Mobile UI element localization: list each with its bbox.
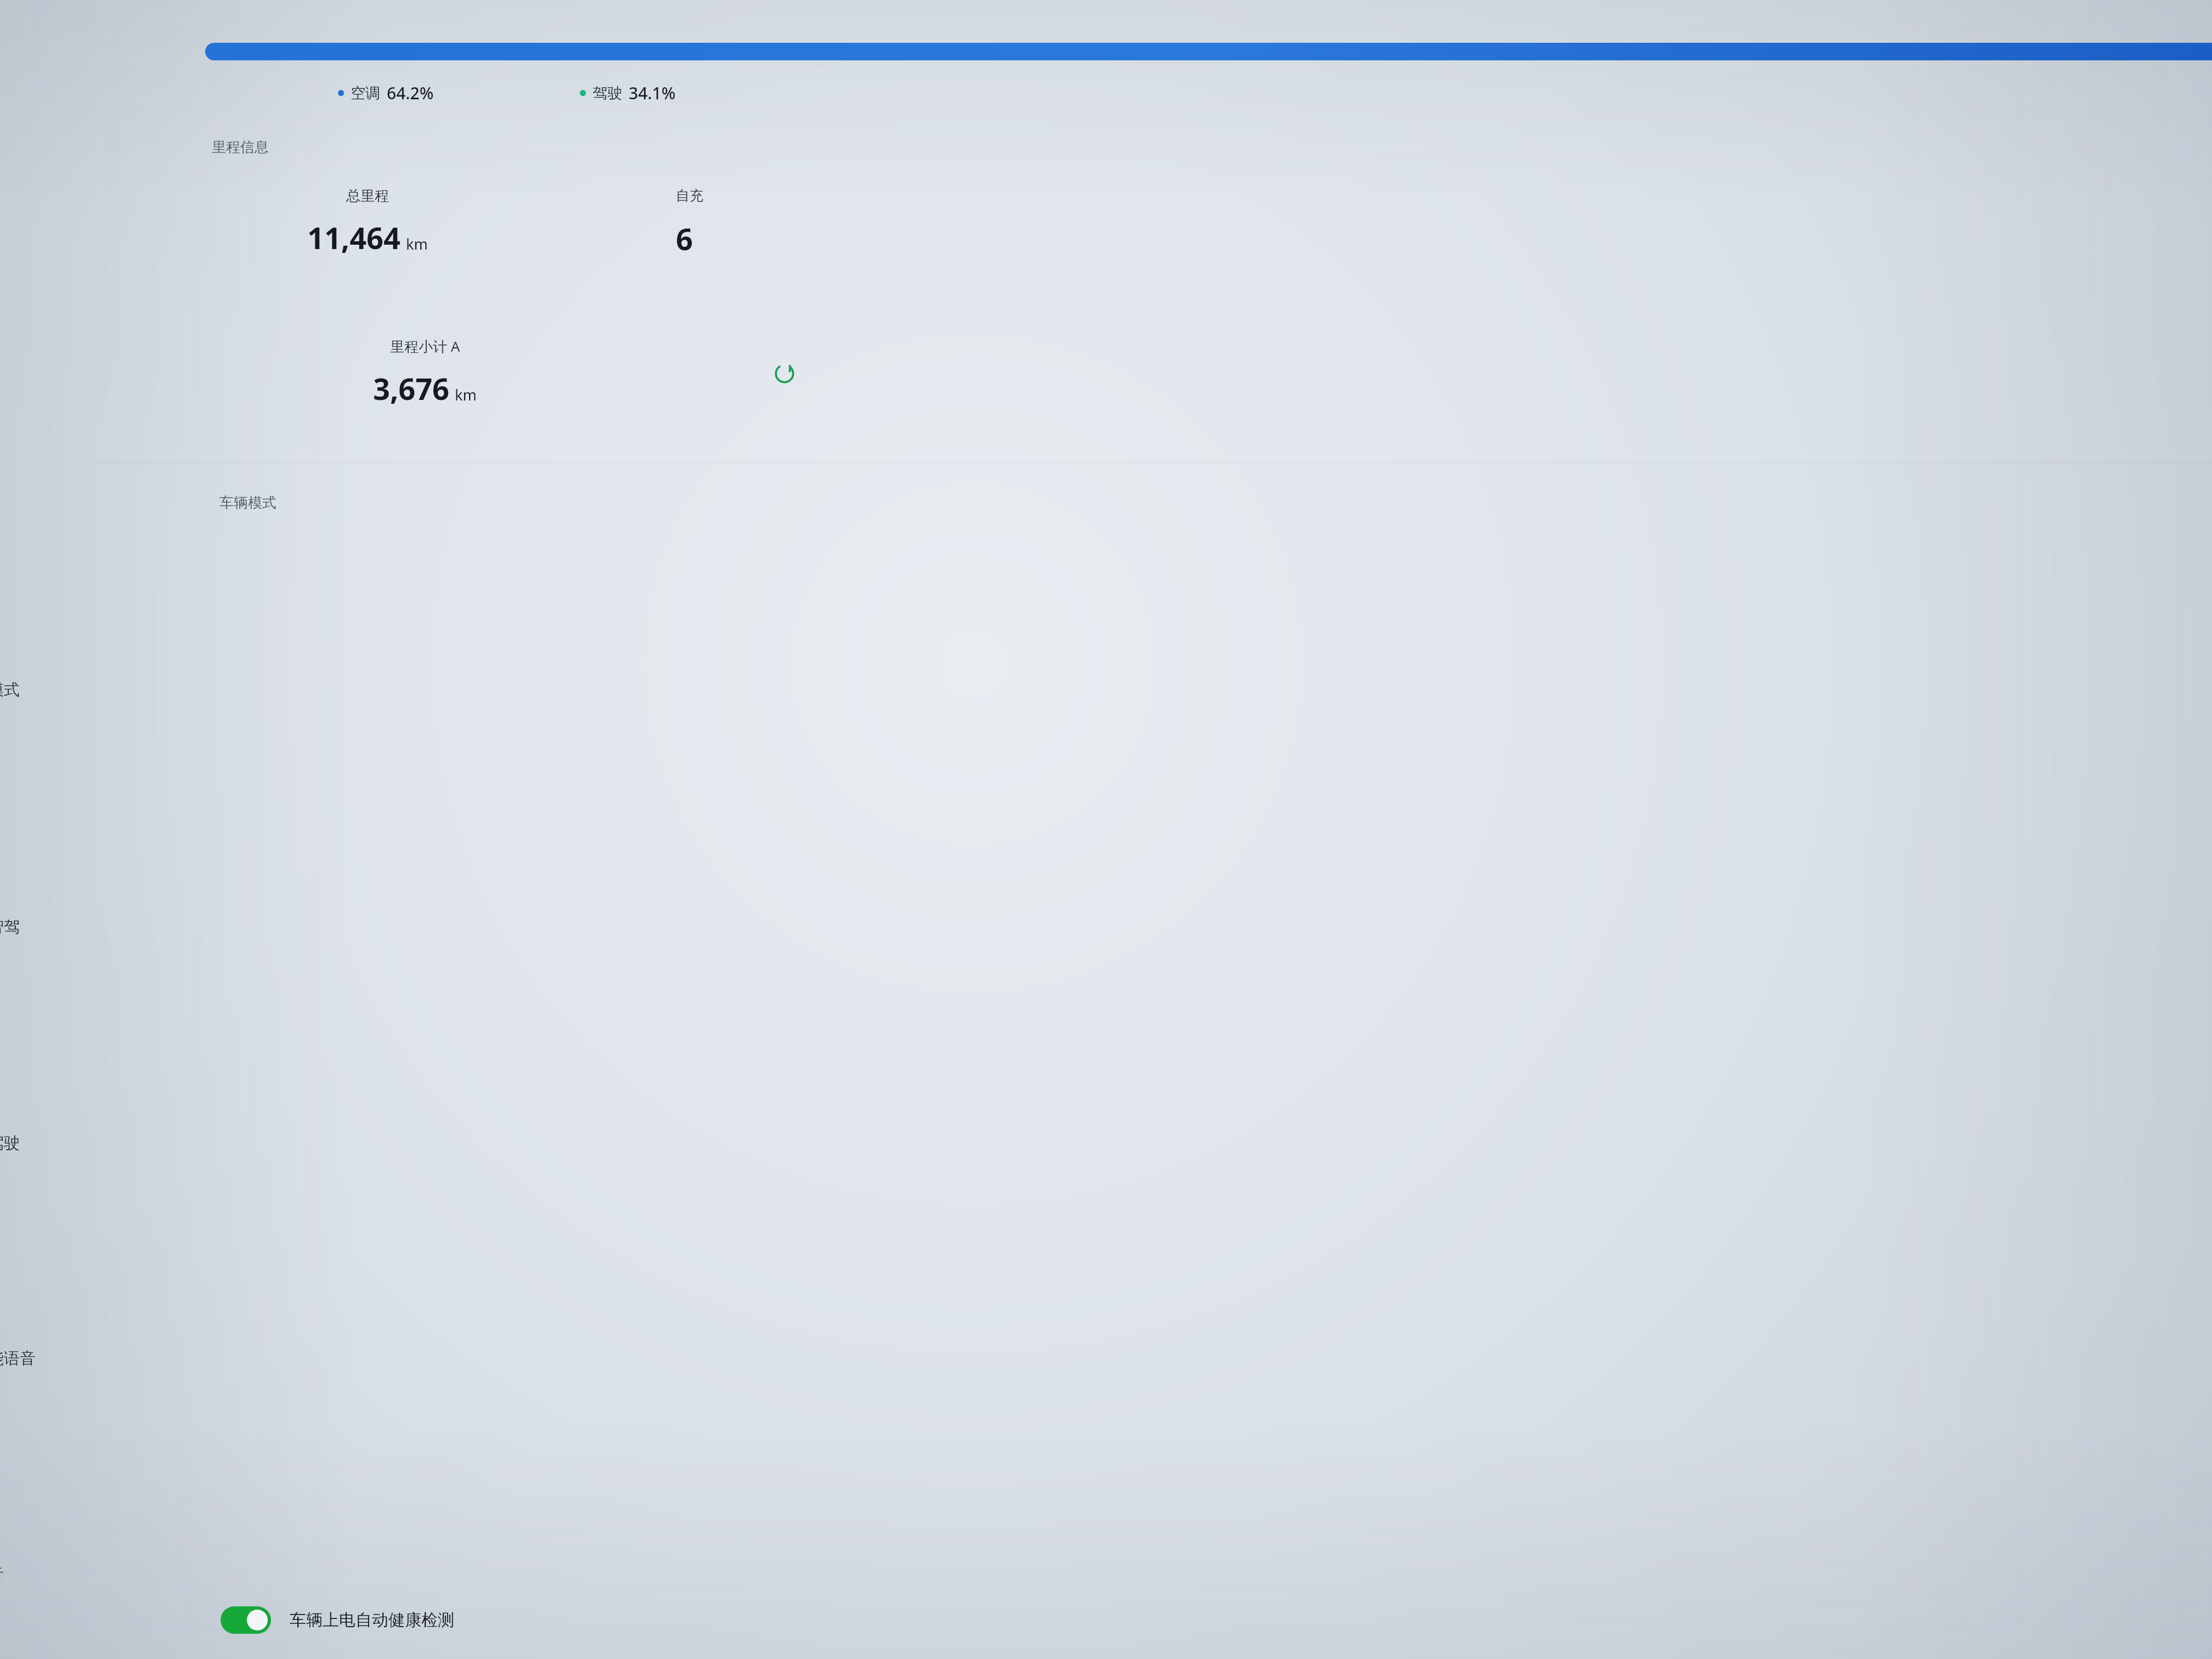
button[interactable]: 驾驶 [0, 1127, 61, 1158]
button[interactable]: 里程小计 A [373, 336, 477, 409]
button[interactable]: 自充 [676, 187, 703, 259]
staticText: 智驾 [0, 917, 20, 937]
button[interactable]: 车辆上电自动健康检测 [217, 1602, 458, 1638]
staticText: 自充 [676, 187, 703, 204]
staticText: 模式 [0, 680, 20, 700]
staticText: 总里程 [346, 187, 389, 205]
staticText: 空调 [351, 84, 380, 103]
button[interactable]: 模式 [0, 674, 61, 705]
staticText: km [406, 234, 428, 254]
staticText: 车辆模式 [219, 494, 276, 512]
button[interactable]: 驾驶 [578, 80, 678, 106]
button[interactable]: 音 [0, 1559, 61, 1589]
button[interactable]: 总里程 [307, 187, 428, 258]
staticText: 驾驶 [0, 1133, 20, 1153]
button[interactable]: 重置里程小计 [766, 355, 803, 392]
staticText: 车辆上电自动健康检测 [290, 1610, 454, 1630]
staticText: 能语音 [0, 1348, 36, 1369]
staticText: 6 [676, 218, 693, 259]
button[interactable]: 空调 [336, 80, 436, 106]
staticText: 64.2% [387, 82, 434, 104]
button[interactable]: 能语音 [0, 1343, 61, 1374]
staticText: km [455, 385, 477, 405]
staticText: 音 [0, 1564, 4, 1584]
staticText: 34.1% [629, 82, 676, 104]
button[interactable]: 智驾 [0, 911, 61, 942]
staticText: 3,676 [373, 368, 449, 409]
staticText: 11,464 [307, 217, 400, 258]
staticText: 里程小计 A [390, 336, 460, 356]
staticText: 里程信息 [212, 138, 269, 156]
staticText: 驾驶 [592, 84, 622, 103]
